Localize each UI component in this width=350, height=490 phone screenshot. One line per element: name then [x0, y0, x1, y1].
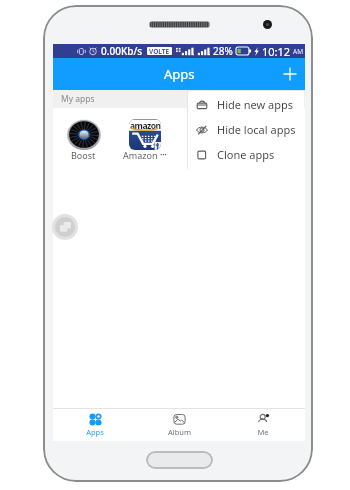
button[interactable]: Add [275, 59, 305, 89]
staticText: Me [257, 427, 269, 437]
staticText: 0.00Kb/s [101, 44, 143, 58]
staticText: 10:12 [262, 44, 291, 58]
staticText: Album [168, 427, 191, 437]
button[interactable]: Hide local apps [188, 117, 304, 142]
staticText: Apps [86, 427, 104, 437]
button[interactable]: Hide new apps [188, 92, 304, 117]
staticText: Hide new apps [217, 97, 294, 112]
staticText: ••• [160, 151, 167, 159]
button[interactable]: Boost [53, 119, 114, 162]
staticText: Hide local apps [217, 122, 296, 137]
staticText: amazon [130, 120, 161, 132]
staticText: AM [293, 47, 304, 56]
staticText: 28% [213, 44, 233, 58]
button[interactable]: Clone apps [188, 142, 304, 167]
staticText: Amazon [123, 149, 158, 161]
button[interactable]: Apps [53, 409, 137, 441]
button[interactable]: Me [221, 409, 305, 441]
staticText: VOLTE [149, 47, 170, 55]
button[interactable]: Album [137, 409, 221, 441]
staticText: My apps [61, 93, 95, 105]
staticText: Apps [164, 65, 195, 83]
button[interactable]: amazon [114, 119, 175, 162]
staticText: Boost [71, 149, 96, 161]
button[interactable]: Clone overlay [52, 214, 78, 240]
staticText: Clone apps [217, 147, 275, 162]
